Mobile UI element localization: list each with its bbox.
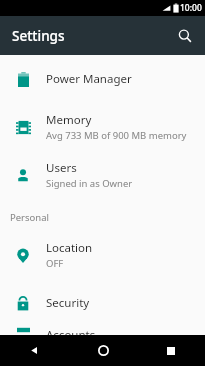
staticText: Security	[46, 295, 90, 311]
button[interactable]: Location	[0, 231, 205, 279]
staticText: Power Manager	[46, 71, 132, 87]
button[interactable]: Home	[69, 335, 137, 366]
staticText: Settings	[12, 27, 65, 45]
button[interactable]: Memory	[0, 103, 205, 151]
staticText: Accounts	[46, 327, 96, 335]
staticText: Personal	[10, 211, 49, 224]
staticText: Location	[46, 240, 93, 256]
button[interactable]: Power Manager	[0, 55, 205, 103]
staticText: OFF	[46, 257, 64, 270]
staticText: Memory	[46, 112, 92, 128]
button[interactable]: Users	[0, 151, 205, 199]
staticText: Avg 733 MB of 900 MB memory used	[46, 129, 205, 142]
button[interactable]: Recent apps	[137, 335, 205, 366]
staticText: 10:00	[180, 2, 202, 14]
button[interactable]: Search	[172, 23, 198, 49]
button[interactable]: Security	[0, 279, 205, 327]
staticText: Signed in as Owner	[46, 177, 133, 190]
staticText: Users	[46, 160, 77, 176]
button[interactable]: Back	[0, 335, 69, 366]
button[interactable]: Accounts	[0, 327, 205, 335]
